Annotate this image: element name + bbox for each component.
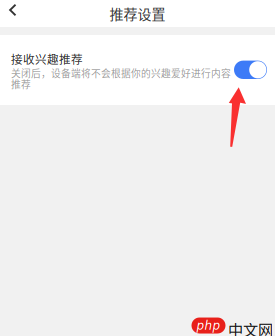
- staticText: 接收兴趣推荐: [11, 50, 83, 67]
- staticText: 推荐设置: [109, 3, 165, 24]
- staticText: 中文网: [228, 318, 273, 336]
- staticText: 关闭后，设备端将不会根据你的兴趣爱好进行内容推荐: [11, 66, 231, 91]
- staticText: php: [196, 318, 220, 332]
- button[interactable]: 返回: [0, 0, 26, 27]
- button[interactable]: 接收兴趣推荐: [0, 0, 41, 26]
